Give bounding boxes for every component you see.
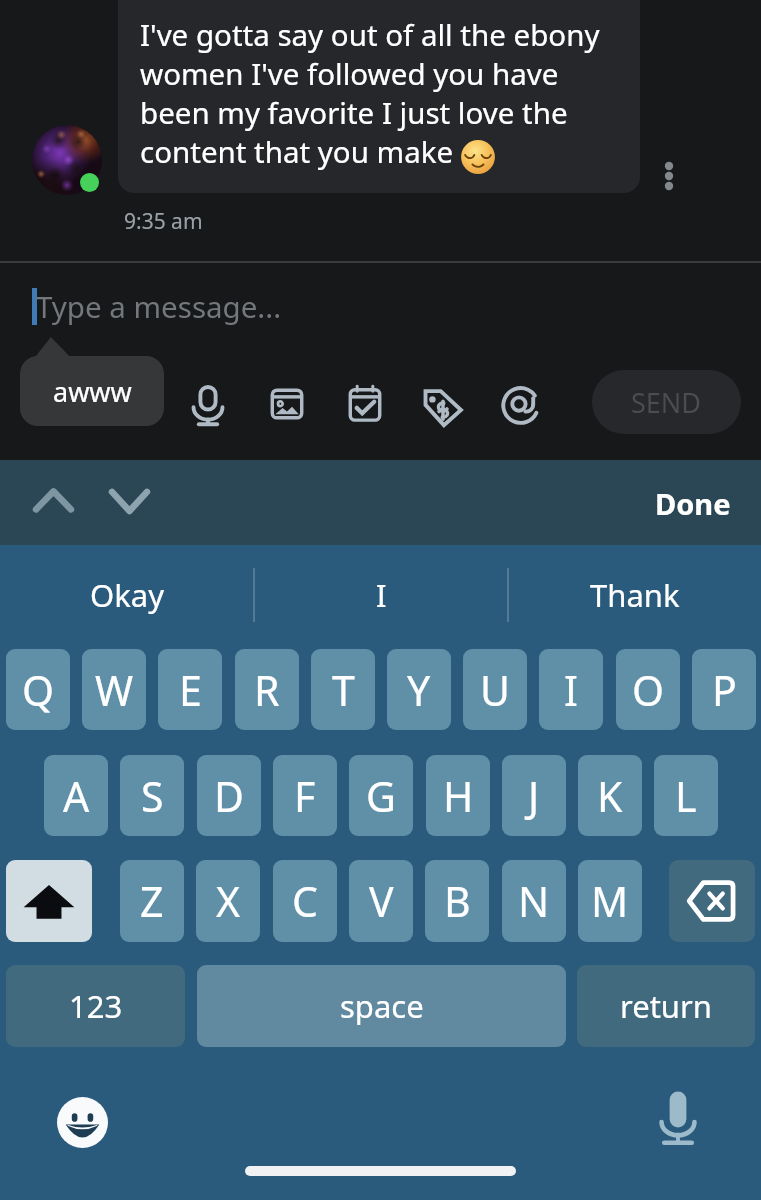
button[interactable]: Next field [103,476,156,529]
staticText: I [376,574,387,616]
button[interactable]: Shift [6,860,92,942]
staticText: SEND [631,384,702,421]
button[interactable]: K [578,755,642,836]
button[interactable]: H [426,755,490,836]
button[interactable]: X [196,860,260,942]
button[interactable]: Y [387,649,451,730]
button[interactable]: W [82,649,146,730]
button[interactable]: Price tag [420,381,466,427]
staticText: I've gotta say out of all the ebony wome… [140,14,600,172]
button[interactable]: Z [120,860,184,942]
staticText: A [63,768,90,824]
staticText: Q [22,662,55,718]
staticText: P [712,662,737,718]
button[interactable]: Attach image [264,381,310,427]
button[interactable]: N [502,860,566,942]
staticText: O [632,662,665,718]
button[interactable]: O [616,649,680,730]
button[interactable]: Voice message [185,381,231,427]
button[interactable]: More options [651,148,687,203]
staticText: X [216,873,241,929]
staticText: I [564,662,578,718]
staticText: F [294,768,316,824]
button[interactable]: C [273,860,337,942]
staticText: Okay [90,574,164,616]
button[interactable]: B [425,860,489,942]
button[interactable]: U [463,649,527,730]
staticText: Z [140,873,164,929]
button[interactable]: Done [655,483,731,522]
staticText: K [597,768,623,824]
staticText: V [369,873,394,929]
staticText: H [443,768,474,824]
button[interactable]: Previous field [27,476,80,529]
staticText: D [214,768,244,824]
staticText: Thank [590,574,680,616]
button[interactable]: V [349,860,413,942]
staticText: 123 [69,985,123,1027]
staticText: B [444,873,471,929]
button[interactable]: I [255,545,507,645]
staticText: J [528,768,540,824]
staticText: G [366,768,396,824]
button[interactable]: 123 [6,965,185,1047]
button[interactable]: Mention [498,381,544,427]
button[interactable]: Okay [0,545,253,645]
button[interactable]: Emoji [57,1097,108,1148]
button[interactable]: L [654,755,718,836]
button[interactable]: I [539,649,603,730]
button[interactable]: I've gotta say out of all the ebony wome… [118,0,640,193]
button[interactable]: J [502,755,566,836]
button[interactable]: R [235,649,299,730]
button[interactable]: P [692,649,756,730]
staticText: Done [655,484,731,523]
button[interactable]: D [197,755,261,836]
staticText: 9:35 am [124,207,203,236]
staticText: M [591,873,629,929]
staticText: awww [53,373,132,410]
staticText: U [480,662,510,718]
button[interactable]: Q [6,649,70,730]
staticText: E [179,662,202,718]
button[interactable]: M [578,860,642,942]
button[interactable]: Schedule [342,381,388,427]
staticText: C [292,873,318,929]
button[interactable]: T [311,649,375,730]
staticText: T [332,662,355,718]
button[interactable]: SEND [592,370,741,434]
button[interactable]: F [273,755,337,836]
staticText: return [620,985,712,1027]
staticText: R [254,662,280,718]
button[interactable]: Backspace [669,860,755,942]
button[interactable]: Voice input [651,1088,705,1146]
staticText: S [141,768,164,824]
staticText: space [340,985,424,1027]
staticText: L [675,768,697,824]
button[interactable]: space [197,965,566,1047]
staticText: W [95,662,134,718]
button[interactable]: A [44,755,108,836]
button[interactable]: S [120,755,184,836]
button[interactable]: Thank [509,545,761,645]
button[interactable]: G [349,755,413,836]
button[interactable]: awww [20,356,164,426]
button[interactable]: E [158,649,222,730]
staticText: N [518,873,550,929]
staticText: Y [407,662,431,718]
button[interactable]: return [577,965,755,1047]
staticText: Type a message... [36,286,282,326]
